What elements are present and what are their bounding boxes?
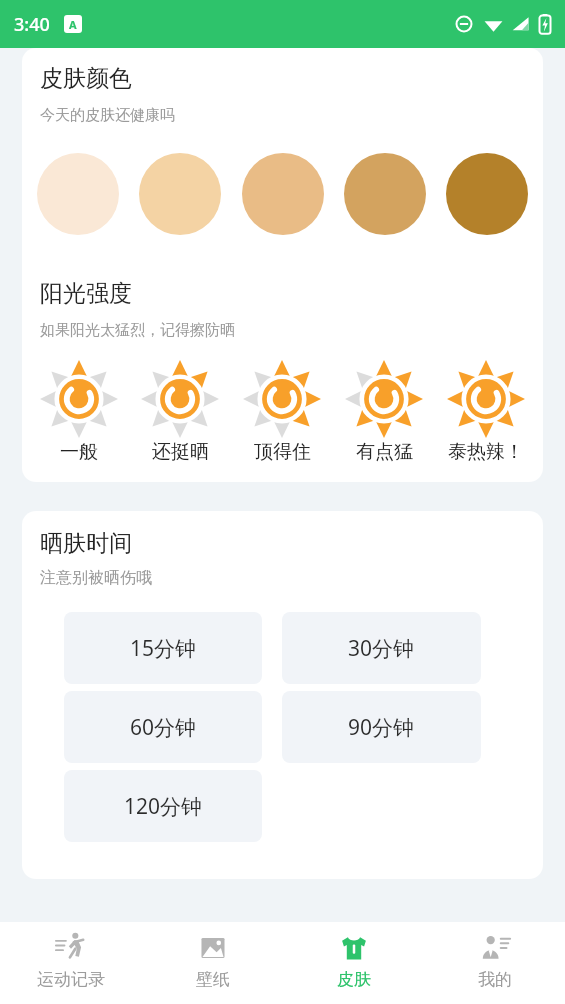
button[interactable]: 运动记录 (0, 922, 142, 1004)
staticText: 有点猛 (356, 440, 413, 464)
button[interactable]: 肤色 1 (37, 153, 119, 235)
button[interactable]: 60分钟 (64, 691, 262, 763)
staticText: 运动记录 (37, 969, 105, 990)
staticText: 皮肤 (337, 969, 371, 990)
staticText: 注意别被晒伤哦 (40, 568, 152, 588)
staticText: A (69, 17, 77, 32)
button[interactable]: 肤色 2 (139, 153, 221, 235)
staticText: 晒肤时间 (40, 529, 132, 558)
staticText: 如果阳光太猛烈，记得擦防晒 (40, 321, 235, 340)
button[interactable]: 30分钟 (282, 612, 481, 684)
staticText: 泰热辣！ (448, 440, 524, 464)
button[interactable]: 有点猛 (333, 358, 435, 466)
button[interactable]: 壁纸 (142, 922, 283, 1004)
staticText: 顶得住 (254, 440, 311, 464)
button[interactable]: 还挺晒 (129, 358, 231, 466)
button[interactable]: 泰热辣！ (435, 358, 537, 466)
staticText: 3:40 (14, 12, 50, 37)
staticText: 15分钟 (130, 634, 197, 663)
button[interactable]: 15分钟 (64, 612, 262, 684)
button[interactable]: 120分钟 (64, 770, 262, 842)
staticText: 120分钟 (124, 792, 203, 821)
button[interactable]: 肤色 3 (242, 153, 324, 235)
button[interactable]: 肤色 5 (446, 153, 528, 235)
button[interactable]: 皮肤 (283, 922, 424, 1004)
staticText: 还挺晒 (152, 440, 209, 464)
button[interactable]: 一般 (28, 358, 129, 466)
staticText: 60分钟 (130, 713, 197, 742)
staticText: 壁纸 (196, 969, 230, 990)
staticText: 今天的皮肤还健康吗 (40, 106, 175, 125)
staticText: 90分钟 (348, 713, 415, 742)
button[interactable]: 我的 (424, 922, 565, 1004)
button[interactable]: 顶得住 (231, 358, 333, 466)
staticText: 30分钟 (348, 634, 415, 663)
staticText: 阳光强度 (40, 279, 132, 308)
staticText: 皮肤颜色 (40, 64, 132, 93)
staticText: 我的 (478, 969, 512, 990)
staticText: 一般 (60, 440, 98, 464)
button[interactable]: 90分钟 (282, 691, 481, 763)
button[interactable]: 肤色 4 (344, 153, 426, 235)
